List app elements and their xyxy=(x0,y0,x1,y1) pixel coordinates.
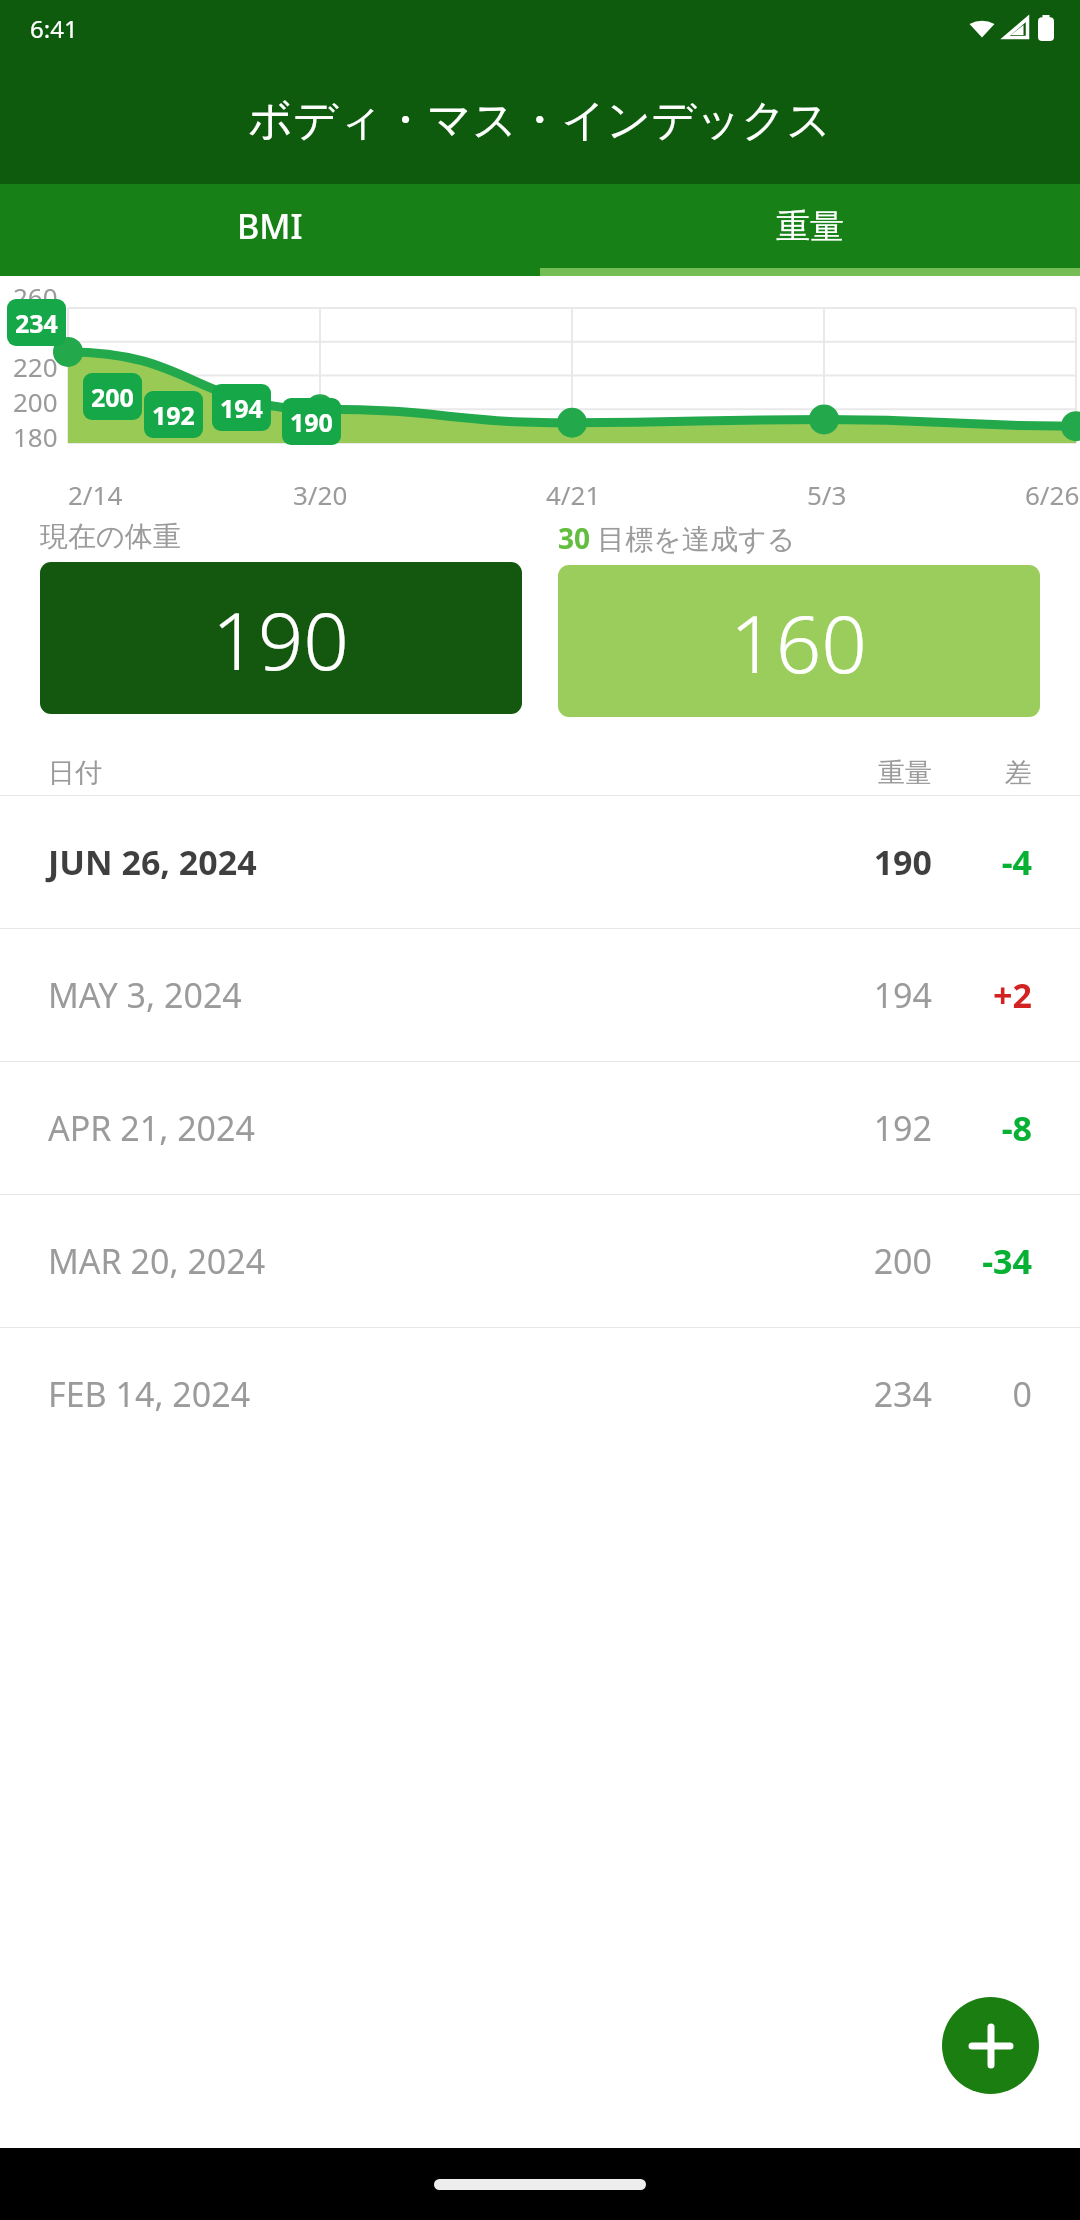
staticText: 6/26 xyxy=(1025,477,1080,512)
staticText: 200 xyxy=(91,380,134,414)
staticText: BMI xyxy=(237,203,303,249)
staticText: 192 xyxy=(152,398,195,432)
staticText: 日付 xyxy=(48,756,802,790)
button[interactable]: JUN 26, 2024 xyxy=(0,796,1080,928)
staticText: 重量 xyxy=(802,756,932,790)
staticText: +2 xyxy=(954,972,1032,1018)
staticText: 重量 xyxy=(776,205,844,248)
staticText: 4/21 xyxy=(546,477,601,512)
staticText: 190 xyxy=(802,839,932,885)
staticText: 240 xyxy=(13,314,58,349)
staticText: 220 xyxy=(13,349,58,384)
staticText: 190 xyxy=(290,405,333,439)
staticText: -4 xyxy=(954,839,1032,885)
staticText: 200 xyxy=(13,384,58,419)
button[interactable]: 160 xyxy=(558,565,1040,717)
staticText: MAR 20, 2024 xyxy=(48,1238,802,1284)
staticText: 30 目標を達成する xyxy=(558,519,796,557)
button[interactable]: BMI xyxy=(0,184,540,268)
staticText: ボディ・マス・インデックス xyxy=(248,93,832,148)
button[interactable]: FEB 14, 2024 xyxy=(0,1328,1080,1460)
button[interactable]: MAY 3, 2024 xyxy=(0,929,1080,1061)
staticText: 3/20 xyxy=(293,477,348,512)
staticText: MAY 3, 2024 xyxy=(48,972,802,1018)
staticText: 200 xyxy=(802,1238,932,1284)
staticText: JUN 26, 2024 xyxy=(48,839,802,885)
staticText: 180 xyxy=(13,419,58,454)
staticText: -34 xyxy=(954,1238,1032,1284)
staticText: 160 xyxy=(730,587,868,696)
staticText: 差 xyxy=(954,756,1032,790)
staticText: 260 xyxy=(13,279,58,314)
button[interactable]: APR 21, 2024 xyxy=(0,1062,1080,1194)
button[interactable]: 重量 xyxy=(540,184,1080,268)
staticText: FEB 14, 2024 xyxy=(48,1371,802,1417)
staticText: 0 xyxy=(954,1371,1032,1417)
button[interactable]: 190 xyxy=(40,562,522,714)
button[interactable]: Add weight entry xyxy=(942,1997,1039,2094)
staticText: APR 21, 2024 xyxy=(48,1105,802,1151)
staticText: 192 xyxy=(802,1105,932,1151)
button[interactable]: MAR 20, 2024 xyxy=(0,1195,1080,1327)
staticText: 194 xyxy=(220,391,263,425)
staticText: -8 xyxy=(954,1105,1032,1151)
staticText: 234 xyxy=(15,306,58,340)
staticText: 現在の体重 xyxy=(40,519,181,554)
staticText: 194 xyxy=(802,972,932,1018)
staticText: 5/3 xyxy=(807,477,847,512)
staticText: 6:41 xyxy=(30,12,78,45)
staticText: 234 xyxy=(802,1371,932,1417)
staticText: 190 xyxy=(212,584,350,693)
staticText: 2/14 xyxy=(68,477,123,512)
